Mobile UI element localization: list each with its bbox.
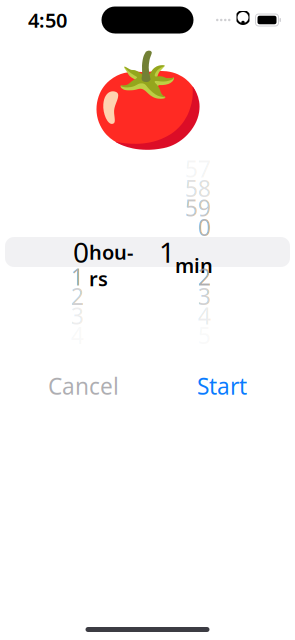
staticText: 4 bbox=[198, 301, 211, 331]
staticText: 59 bbox=[185, 193, 211, 223]
staticText: 4 bbox=[71, 320, 84, 350]
staticText: 2 bbox=[71, 281, 84, 311]
staticText: 57 bbox=[185, 154, 211, 184]
button[interactable]: Start bbox=[193, 365, 251, 407]
staticText: 🍅 bbox=[89, 48, 205, 154]
staticText: Start bbox=[197, 371, 247, 401]
staticText: 3 bbox=[71, 301, 84, 331]
staticText: 3 bbox=[198, 281, 211, 311]
staticText: 0 bbox=[198, 212, 211, 242]
staticText: 2 bbox=[198, 262, 211, 292]
staticText: 5 bbox=[198, 320, 211, 350]
staticText: 58 bbox=[185, 173, 211, 203]
staticText: 1 bbox=[71, 262, 84, 292]
staticText: 0 bbox=[73, 233, 89, 271]
staticText: min bbox=[175, 225, 213, 278]
staticText: 1 bbox=[159, 233, 175, 271]
staticText: hours bbox=[89, 212, 133, 292]
staticText: 4:50 bbox=[28, 7, 67, 33]
staticText: Cancel bbox=[48, 371, 119, 401]
button[interactable]: Cancel bbox=[44, 365, 123, 407]
